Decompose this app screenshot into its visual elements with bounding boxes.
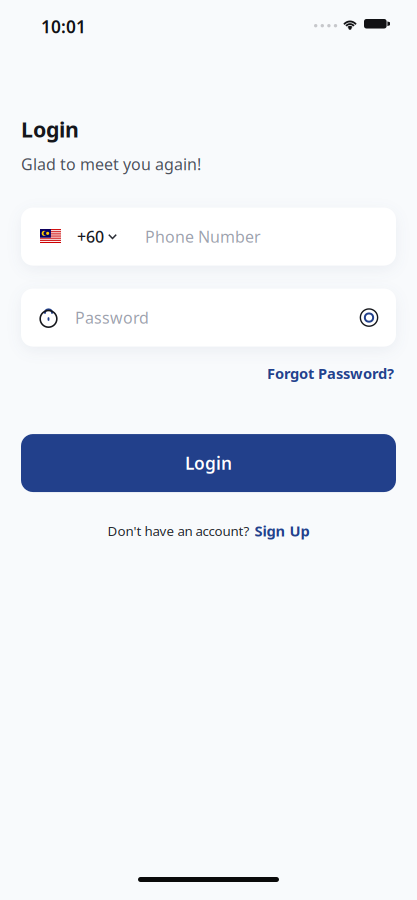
staticText: Don't have an account?: [107, 522, 249, 540]
button[interactable]: Password: [21, 289, 396, 347]
staticText: Login: [185, 451, 232, 474]
staticText: Password: [75, 307, 149, 328]
button[interactable]: +60: [21, 208, 396, 266]
staticText: Sign Up: [254, 521, 309, 541]
staticText: Forgot Password?: [267, 364, 394, 383]
staticText: Phone Number: [145, 226, 261, 247]
button[interactable]: Sign Up: [254, 521, 309, 541]
button[interactable]: Forgot Password?: [267, 364, 394, 383]
staticText: 10:01: [41, 15, 86, 38]
button[interactable]: Login: [21, 434, 396, 492]
staticText: +60: [77, 226, 104, 247]
staticText: Login: [21, 115, 79, 143]
staticText: Glad to meet you again!: [21, 153, 201, 174]
